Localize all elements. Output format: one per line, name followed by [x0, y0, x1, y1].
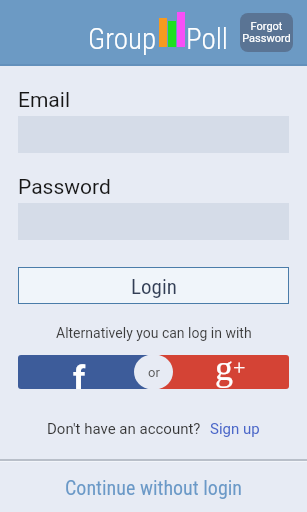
- staticText: Login: [131, 275, 177, 300]
- staticText: Password: [18, 175, 111, 200]
- button[interactable]: Continue without login: [65, 476, 243, 499]
- button[interactable]: Sign up: [210, 420, 260, 438]
- staticText: Poll: [186, 22, 228, 56]
- staticText: Email: [18, 88, 70, 113]
- button[interactable]: Forgot Password: [240, 13, 293, 52]
- staticText: Group: [88, 22, 157, 56]
- button[interactable]: Login: [18, 267, 289, 304]
- staticText: +: [233, 355, 246, 379]
- staticText: Alternatively you can log in with: [56, 325, 252, 341]
- staticText: or: [148, 365, 160, 380]
- staticText: g: [215, 355, 233, 382]
- staticText: Forgot Password: [242, 20, 291, 45]
- button[interactable]: f: [18, 355, 149, 389]
- staticText: f: [73, 358, 86, 389]
- button[interactable]: g: [158, 355, 289, 389]
- staticText: Don't have an account?: [47, 420, 201, 438]
